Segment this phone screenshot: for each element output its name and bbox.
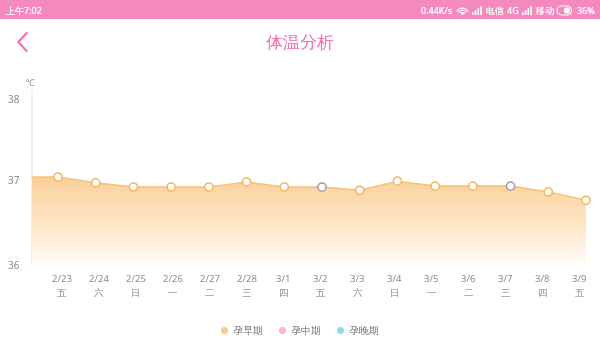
staticText: 一 [168,287,178,299]
staticText: 移动 [536,5,554,16]
staticText: 2/23 [52,272,72,285]
staticText: 一 [427,287,437,299]
staticText: 孕中期 [291,324,321,337]
staticText: 二 [464,287,474,299]
staticText: ℃ [26,76,35,88]
staticText: 二 [205,287,215,299]
staticText: 3/1 [276,272,291,285]
staticText: 3/8 [535,272,550,285]
staticText: 日 [390,287,400,299]
staticText: 2/27 [200,272,220,285]
button[interactable]: 孕晚期 [337,324,379,337]
button[interactable]: 孕中期 [279,324,321,337]
staticText: 三 [501,287,511,299]
staticText: 电信 [486,5,504,16]
staticText: 日 [131,287,141,299]
staticText: 2/26 [163,272,183,285]
staticText: 3/7 [498,272,513,285]
staticText: 3/4 [387,272,402,285]
staticText: 37 [8,173,20,187]
staticText: 四 [538,287,548,299]
staticText: 2/24 [89,272,109,285]
staticText: 2/25 [126,272,146,285]
staticText: 四 [279,287,289,299]
staticText: 体温分析 [266,32,334,53]
button[interactable]: 孕早期 [221,324,263,337]
staticText: 五 [57,287,67,299]
staticText: 38 [8,92,20,106]
staticText: 3/5 [424,272,439,285]
staticText: 3/9 [572,272,587,285]
staticText: 上午7:02 [6,4,42,16]
staticText: 2/28 [237,272,257,285]
staticText: 0.44K/s [421,4,453,16]
button[interactable]: Back [0,20,44,64]
staticText: 六 [353,287,363,299]
staticText: 3/2 [313,272,328,285]
staticText: 4G [507,4,519,16]
staticText: 孕早期 [233,324,263,337]
staticText: 3/6 [461,272,476,285]
staticText: 五 [316,287,326,299]
staticText: 36% [577,4,595,16]
staticText: 六 [94,287,104,299]
staticText: 3/3 [350,272,365,285]
staticText: 三 [242,287,252,299]
staticText: 五 [575,287,585,299]
staticText: 36 [8,258,20,272]
staticText: 孕晚期 [349,324,379,337]
